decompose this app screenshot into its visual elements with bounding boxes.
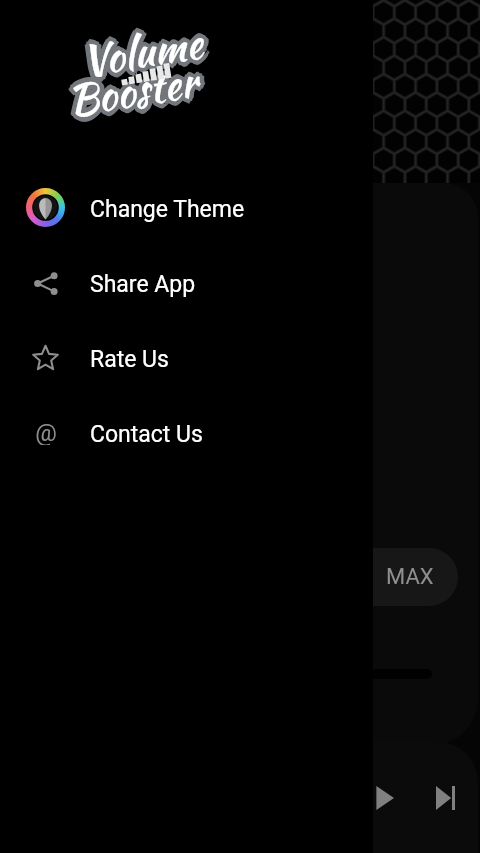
staticText: MAX xyxy=(386,564,434,590)
staticText: Booster xyxy=(63,54,202,135)
staticText: Booster xyxy=(59,52,198,132)
button[interactable]: Change Theme xyxy=(0,172,373,247)
staticText: Volume xyxy=(72,13,202,92)
staticText: Booster xyxy=(67,50,206,131)
staticText: Booster xyxy=(65,54,204,134)
staticText: Booster xyxy=(64,55,203,136)
staticText: Booster xyxy=(62,45,201,126)
staticText: Booster xyxy=(60,48,198,128)
staticText: Volume xyxy=(77,16,207,95)
staticText: Volume xyxy=(73,13,203,93)
staticText: Contact Us xyxy=(90,421,203,448)
staticText: Booster xyxy=(63,50,202,131)
staticText: Volume xyxy=(80,14,210,94)
staticText: Volume xyxy=(74,9,204,89)
staticText: Booster xyxy=(66,52,205,133)
staticText: Rate Us xyxy=(90,346,169,373)
staticText: Volume xyxy=(78,17,208,96)
button[interactable]: Share App xyxy=(0,247,373,322)
staticText: Booster xyxy=(61,53,199,134)
staticText: Volume xyxy=(79,16,209,95)
staticText: Volume xyxy=(77,12,207,91)
staticText: Change Theme xyxy=(90,196,245,223)
button[interactable]: MAX xyxy=(330,548,458,606)
staticText: Booster xyxy=(67,48,206,129)
staticText: Volume xyxy=(79,8,209,88)
button[interactable]: Rate Us xyxy=(0,322,373,397)
staticText: Booster xyxy=(63,46,202,127)
button[interactable]: @ xyxy=(0,397,373,472)
staticText: @ xyxy=(35,419,57,445)
staticText: Volume xyxy=(75,8,205,87)
staticText: Volume xyxy=(81,10,211,89)
staticText: Booster xyxy=(61,46,200,127)
staticText: Volume xyxy=(76,7,206,86)
button[interactable]: Next track xyxy=(424,778,464,818)
staticText: Booster xyxy=(65,47,204,127)
staticText: Volume xyxy=(74,15,204,94)
staticText: Volume xyxy=(73,11,203,91)
staticText: Share App xyxy=(90,271,196,298)
staticText: Volume xyxy=(77,8,207,87)
staticText: Booster xyxy=(68,49,207,130)
staticText: Booster xyxy=(58,51,197,131)
staticText: Volume xyxy=(81,12,211,91)
staticText: Volume xyxy=(82,11,212,90)
button[interactable]: Play xyxy=(362,778,402,818)
staticText: Booster xyxy=(59,50,198,130)
